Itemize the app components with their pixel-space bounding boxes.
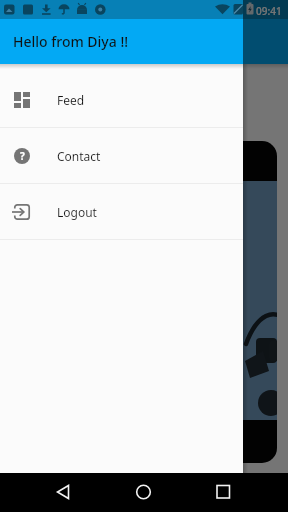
button[interactable] (0, 473, 96, 512)
staticText: 09:41 (256, 4, 282, 18)
button[interactable] (96, 473, 192, 512)
staticText: Logout (57, 204, 97, 220)
button[interactable]: Logout (0, 184, 243, 239)
staticText: Hello from Diya !! (13, 32, 129, 51)
staticText: ? (20, 149, 25, 163)
button[interactable]: Feed (0, 72, 243, 127)
staticText: Feed (57, 92, 85, 108)
button[interactable] (192, 473, 288, 512)
staticText: Contact (57, 148, 101, 164)
button[interactable]: ? (0, 128, 243, 183)
